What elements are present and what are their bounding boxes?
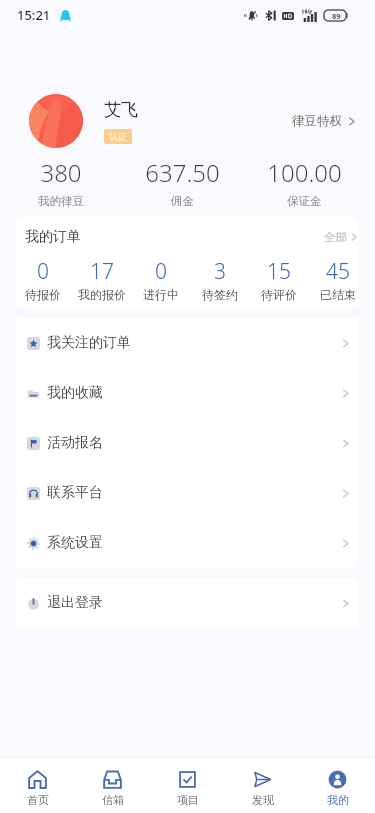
staticText: 认证 [109,131,127,142]
staticText: 0 [155,257,167,286]
staticText: 待报价 [25,287,61,302]
staticText: 380 [40,156,82,189]
button[interactable]: 我关注的订单 [16,318,359,368]
staticText: 15:21 [17,6,51,24]
staticText: 我的律豆 [38,194,84,208]
staticText: 联系平台 [47,484,103,502]
button[interactable]: 发现 [225,758,300,813]
staticText: 系统设置 [47,534,103,552]
staticText: 信箱 [102,793,124,807]
button[interactable]: 信箱 [75,758,150,813]
staticText: 3 [214,257,226,286]
button[interactable]: 我的 [300,758,375,813]
staticText: 发现 [252,793,274,807]
button[interactable]: 全部 [324,224,358,250]
staticText: 我的报价 [78,287,126,302]
button[interactable]: 3 [190,257,249,302]
button[interactable]: 律豆特权 [290,105,358,137]
staticText: 活动报名 [47,434,103,452]
staticText: 待签约 [202,287,238,302]
staticText: 我的订单 [25,228,81,246]
button[interactable]: 0 [131,257,190,302]
button[interactable]: 637.50 [121,156,243,208]
staticText: 637.50 [145,156,220,189]
staticText: 17 [90,257,114,286]
staticText: 全部 [324,230,347,244]
staticText: 保证金 [287,194,322,208]
button[interactable]: 100.00 [243,156,365,208]
staticText: 艾飞 [104,99,138,120]
button[interactable]: 联系平台 [16,468,359,518]
staticText: 待评价 [261,287,297,302]
button[interactable]: 退出登录 [16,578,359,628]
button[interactable]: Avatar [29,94,83,148]
staticText: 100.00 [267,156,342,189]
button[interactable]: 45 [308,257,359,302]
staticText: 律豆特权 [292,113,342,129]
button[interactable]: 380 [0,156,121,208]
staticText: 0 [37,257,49,286]
staticText: 我关注的订单 [47,334,131,352]
button[interactable]: 我的收藏 [16,368,359,418]
staticText: 进行中 [143,287,179,302]
staticText: 项目 [177,793,199,807]
button[interactable]: 项目 [150,758,225,813]
button[interactable]: 15 [249,257,308,302]
button[interactable]: 17 [72,257,131,302]
staticText: 45 [326,257,350,286]
button[interactable]: 0 [16,257,72,302]
staticText: 退出登录 [47,594,103,612]
staticText: 佣金 [171,194,194,208]
staticText: 我的收藏 [47,384,103,402]
staticText: 首页 [27,793,49,807]
staticText: 我的 [327,793,349,807]
staticText: 已结束 [320,287,356,302]
button[interactable]: 首页 [0,758,75,813]
button[interactable]: 活动报名 [16,418,359,468]
button[interactable]: 系统设置 [16,518,359,568]
staticText: 89 [332,11,341,21]
staticText: 15 [267,257,291,286]
